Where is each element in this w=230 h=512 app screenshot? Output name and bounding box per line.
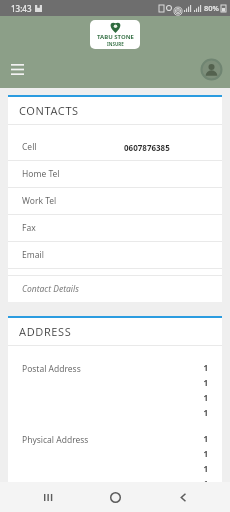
button[interactable]: Back	[163, 482, 203, 512]
button[interactable]: Physical Address	[8, 431, 222, 482]
staticText: TABU STONE	[97, 33, 134, 41]
staticText: Contact Details	[22, 283, 79, 295]
button[interactable]: Tabu Stone Insure logo	[90, 20, 140, 49]
button[interactable]: Home Tel	[8, 161, 222, 188]
staticText: Cell	[22, 141, 124, 153]
staticText: Postal Address	[22, 363, 170, 375]
button[interactable]: Home	[95, 482, 135, 512]
staticText: INSURE	[107, 41, 124, 47]
button[interactable]: Fax	[8, 215, 222, 242]
staticText: CONTACTS	[19, 103, 79, 118]
staticText: 1	[203, 407, 208, 418]
button[interactable]: Cell	[8, 134, 222, 161]
staticText: 1	[203, 478, 208, 482]
staticText: 1	[203, 463, 208, 474]
staticText: ADDRESS	[19, 324, 72, 339]
staticText: 1	[203, 377, 208, 388]
staticText: 0607876385	[124, 142, 170, 153]
staticText: 1	[203, 433, 208, 444]
button[interactable]: Email	[8, 242, 222, 269]
button[interactable]: Work Tel	[8, 188, 222, 215]
staticText: 80%	[204, 3, 219, 13]
staticText: Fax	[22, 222, 208, 234]
button[interactable]: Open navigation menu	[4, 56, 30, 82]
staticText: Physical Address	[22, 434, 170, 446]
staticText: 1	[203, 392, 208, 403]
staticText: Email	[22, 249, 208, 261]
button[interactable]: Postal Address	[8, 360, 222, 420]
button[interactable]: Recent apps	[28, 482, 68, 512]
button[interactable]: Contact Details	[8, 276, 222, 302]
staticText: 1	[203, 448, 208, 459]
staticText: 13:43	[11, 3, 32, 14]
staticText: Work Tel	[22, 195, 208, 207]
button[interactable]: Account profile	[197, 55, 225, 83]
staticText: Home Tel	[22, 168, 208, 180]
staticText: 1	[203, 362, 208, 373]
